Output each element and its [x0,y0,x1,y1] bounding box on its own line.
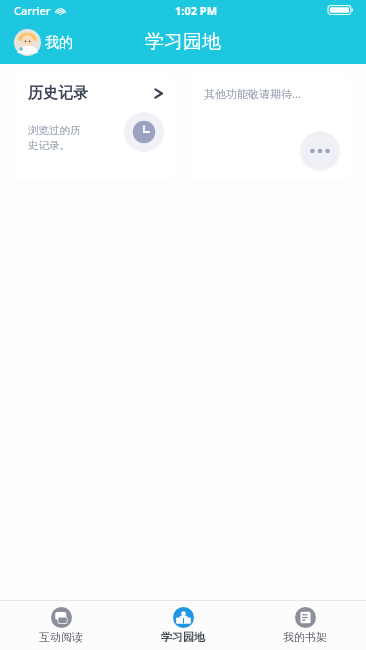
other: 更多功能 [300,131,340,171]
button[interactable]: 互动阅读 [0,601,122,650]
button[interactable]: 我的 头像 [12,27,75,58]
staticText: 互动阅读 [39,630,83,644]
button[interactable]: 历史记录 [14,73,176,180]
button[interactable]: 学习园地 [122,601,244,650]
staticText: 学习园地 [161,630,205,644]
staticText: 1:02 PM [175,3,218,18]
other: 查看历史记录 [153,86,164,101]
button[interactable]: 我的书架 [244,601,366,650]
other: 我的 头像 [14,29,41,56]
staticText: 我的 [45,34,73,52]
staticText: 历史记录 [28,84,88,103]
staticText: Carrier [14,3,51,18]
staticText: 其他功能敬请期待... [204,86,301,101]
staticText: 浏览过的历 史记录。 [28,124,81,152]
button[interactable]: 其他功能敬请期待... [190,73,352,180]
staticText: 学习园地 [145,30,221,54]
staticText: 我的书架 [283,630,327,644]
